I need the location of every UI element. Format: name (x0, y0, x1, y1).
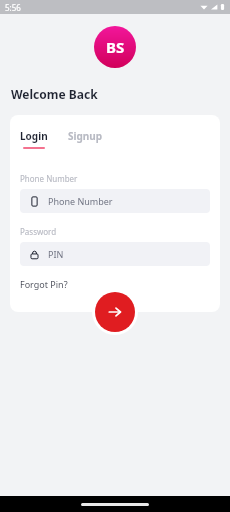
button[interactable]: PIN (20, 242, 210, 266)
button[interactable]: Login (20, 129, 48, 149)
staticText: PIN (48, 248, 64, 260)
staticText: Signup (68, 129, 103, 143)
button[interactable]: Signup (68, 129, 103, 143)
button[interactable]: Phone Number (20, 189, 210, 213)
button[interactable]: BS (94, 26, 136, 68)
button[interactable]: Submit (95, 292, 135, 332)
staticText: Welcome Back (11, 86, 98, 102)
staticText: Login (20, 129, 48, 143)
staticText: Password (20, 226, 57, 237)
staticText: Phone Number (48, 195, 113, 207)
staticText: Forgot Pin? (20, 278, 68, 290)
button[interactable]: Forgot Pin? (20, 278, 68, 290)
staticText: 5:56 (5, 2, 21, 13)
staticText: BS (106, 37, 125, 57)
staticText: Phone Number (20, 173, 78, 184)
